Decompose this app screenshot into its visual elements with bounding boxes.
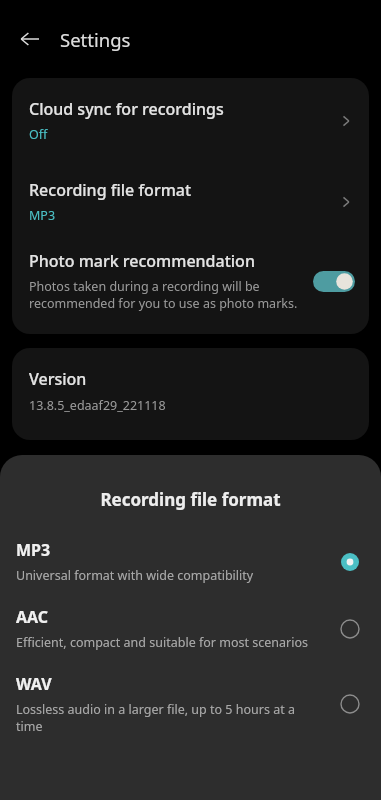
button[interactable]: AAC — [0, 606, 381, 651]
staticText: Efficient, compact and suitable for most… — [16, 634, 308, 651]
staticText: Off — [29, 126, 48, 143]
staticText: Recording file format — [29, 179, 192, 201]
staticText: Photos taken during a recording will be … — [29, 278, 301, 312]
button[interactable]: Photo mark recommendation toggle — [313, 271, 355, 292]
button[interactable]: Version — [12, 348, 369, 440]
staticText: Cloud sync for recordings — [29, 98, 224, 120]
staticText: AAC — [16, 606, 49, 628]
button[interactable]: Photo mark recommendation — [12, 240, 369, 334]
staticText: Version — [29, 368, 87, 390]
staticText: Recording file format — [100, 488, 281, 511]
staticText: MP3 — [16, 539, 51, 561]
staticText: WAV — [16, 673, 52, 695]
staticText: 13.8.5_edaaf29_221118 — [29, 397, 166, 414]
button[interactable]: MP3 option — [335, 547, 365, 577]
staticText: Lossless audio in a larger file, up to 5… — [16, 701, 295, 735]
button[interactable]: Cloud sync for recordings — [12, 78, 369, 159]
staticText: Settings — [60, 27, 131, 52]
button[interactable]: MP3 — [0, 539, 381, 584]
staticText: Photo mark recommendation — [29, 250, 255, 272]
button[interactable]: WAV — [0, 673, 381, 735]
staticText: Universal format with wide compatibility — [16, 567, 254, 584]
button[interactable]: Recording file format — [12, 159, 369, 240]
button[interactable]: Back — [8, 17, 52, 61]
button[interactable]: AAC option — [335, 614, 365, 644]
button[interactable]: WAV option — [335, 689, 365, 719]
staticText: MP3 — [29, 207, 56, 224]
